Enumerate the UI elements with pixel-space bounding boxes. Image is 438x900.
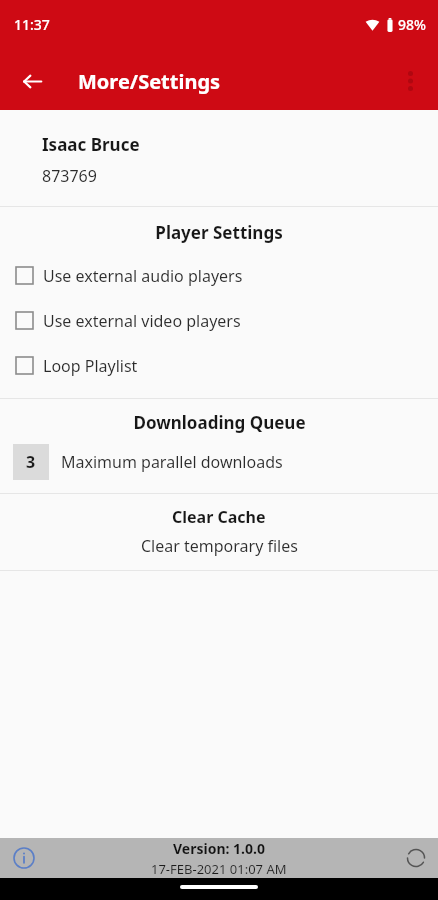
button[interactable]: More options [390,61,430,101]
button[interactable]: Use external audio players [0,253,438,298]
staticText: 17-FEB-2021 01:07 AM [151,860,287,878]
staticText: Isaac Bruce [42,133,140,156]
button[interactable]: Use external video players [0,298,438,343]
staticText: Use external audio players [43,265,243,287]
staticText: Loop Playlist [43,355,138,377]
staticText: Version: 1.0.0 [173,839,265,858]
staticText: 11:37 [14,15,50,34]
staticText: Downloading Queue [133,411,306,434]
button[interactable]: Refresh [400,842,432,874]
staticText: 3 [26,451,36,473]
button[interactable]: 3 [0,441,438,483]
button[interactable]: Info [8,842,40,874]
staticText: 873769 [42,165,97,187]
button[interactable]: Isaac Bruce [0,110,438,206]
staticText: Player Settings [155,221,283,244]
staticText: 98% [398,15,426,34]
staticText: Use external video players [43,310,241,332]
button[interactable]: Back [14,63,50,99]
button[interactable]: Loop Playlist [0,343,438,388]
staticText: Maximum parallel downloads [61,451,283,473]
staticText: More/Settings [78,68,221,95]
staticText: Clear temporary files [141,535,298,557]
button[interactable]: Clear Cache [0,494,438,570]
staticText: Clear Cache [172,506,266,528]
